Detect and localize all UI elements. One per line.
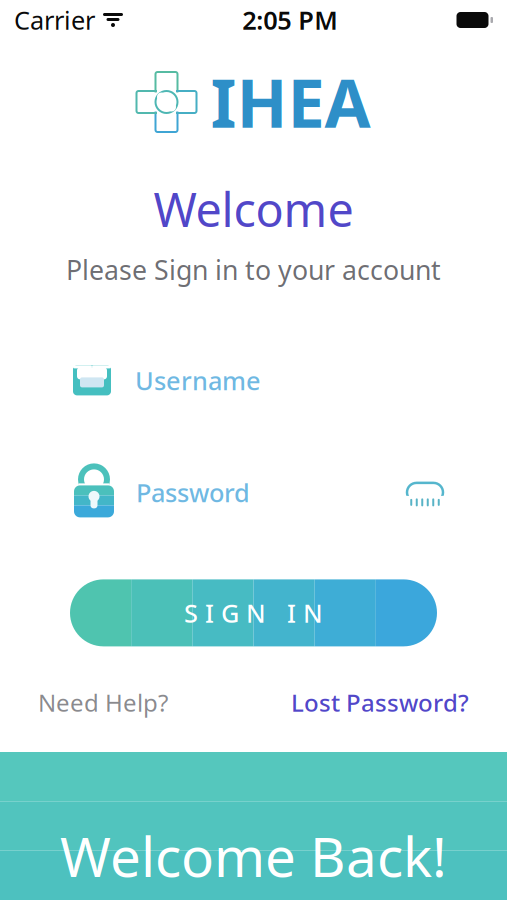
staticText: Welcome Back! bbox=[60, 819, 447, 892]
staticText: S I G N I N bbox=[184, 596, 323, 630]
staticText: Need Help? bbox=[38, 686, 168, 718]
button[interactable]: Lost Password? bbox=[291, 686, 469, 718]
staticText: Password bbox=[136, 476, 250, 509]
button[interactable]: Need Help? bbox=[38, 686, 168, 718]
button[interactable]: S I G N I N bbox=[0, 579, 507, 646]
staticText: Lost Password? bbox=[291, 686, 469, 718]
staticText: 2:05 PM bbox=[242, 3, 338, 37]
staticText: Please Sign in to your account bbox=[66, 252, 441, 287]
staticText: Carrier bbox=[14, 3, 95, 37]
staticText: Welcome bbox=[153, 178, 353, 240]
staticText: Username bbox=[135, 364, 261, 397]
button[interactable]: Show password bbox=[401, 472, 449, 512]
staticText: IHEA bbox=[210, 58, 370, 146]
